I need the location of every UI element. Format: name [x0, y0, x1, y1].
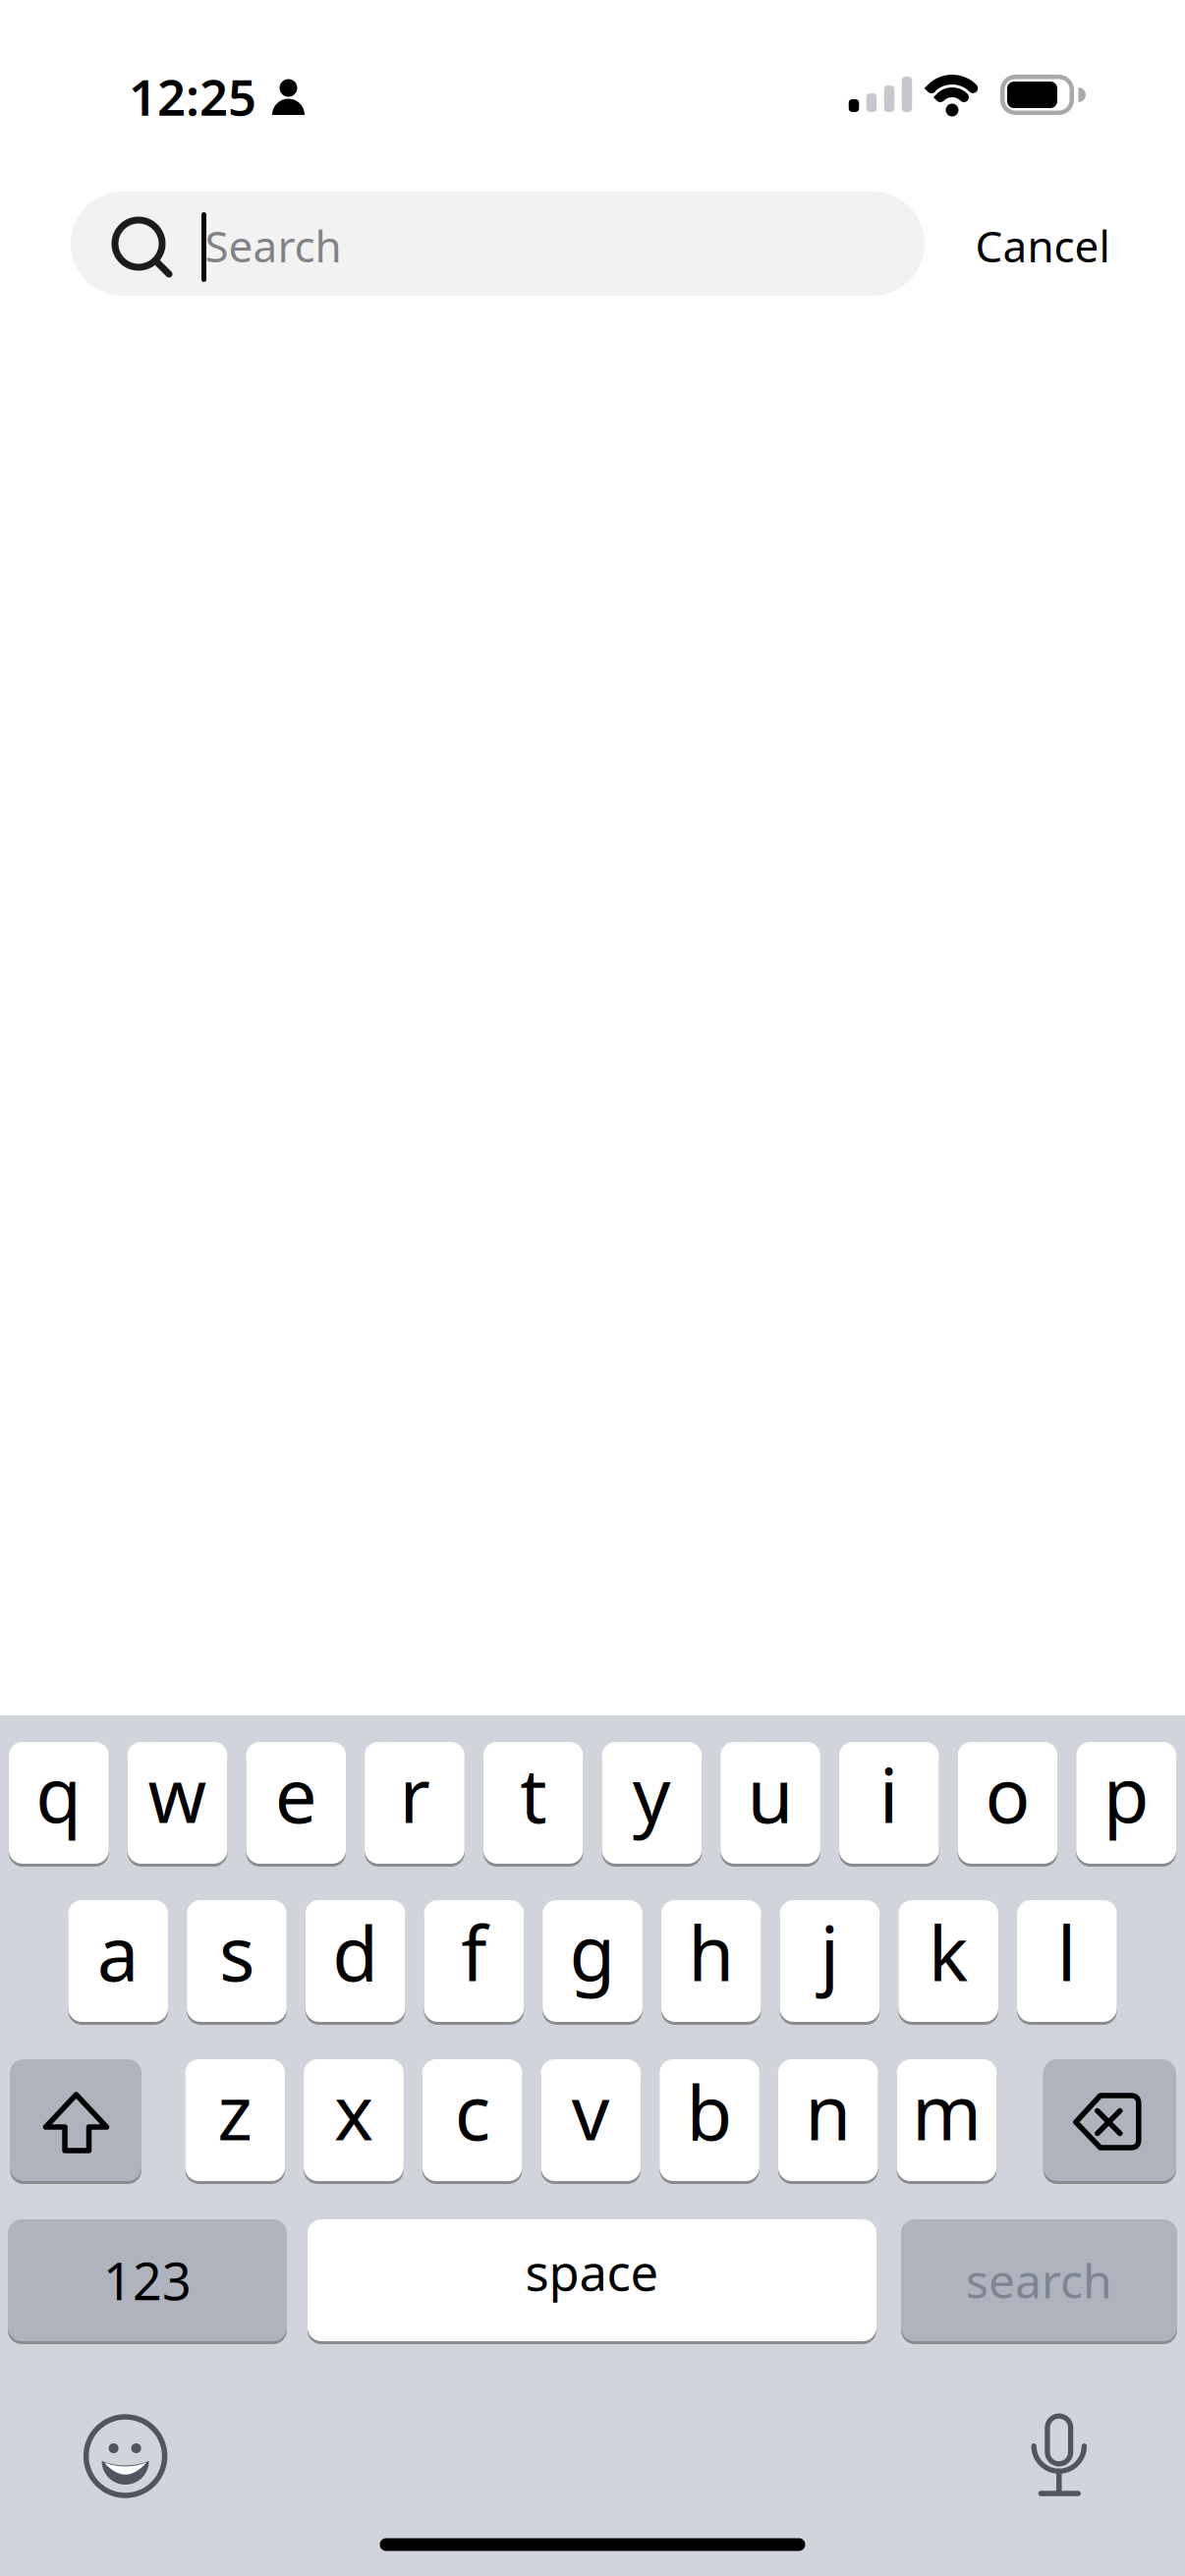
button[interactable]: q	[9, 1742, 109, 1864]
staticText: search	[966, 2249, 1112, 2312]
button[interactable]: Emoji	[71, 2402, 179, 2510]
button[interactable]: search	[901, 2219, 1177, 2341]
button[interactable]: c	[422, 2059, 522, 2181]
staticText: Cancel	[975, 217, 1110, 274]
staticText: t	[520, 1744, 546, 1843]
staticText: n	[805, 2062, 851, 2161]
button[interactable]: m	[897, 2059, 997, 2181]
staticText: z	[217, 2062, 253, 2161]
button[interactable]: s	[187, 1900, 287, 2022]
button[interactable]: p	[1076, 1742, 1176, 1864]
button[interactable]: i	[839, 1742, 939, 1864]
button[interactable]: Delete	[1043, 2059, 1176, 2181]
button[interactable]: v	[541, 2059, 641, 2181]
button[interactable]: z	[185, 2059, 285, 2181]
button[interactable]: y	[602, 1742, 702, 1864]
button[interactable]: l	[1017, 1900, 1117, 2022]
button[interactable]: g	[543, 1900, 643, 2022]
staticText: i	[879, 1744, 899, 1843]
staticText: p	[1103, 1744, 1149, 1843]
button[interactable]: r	[365, 1742, 465, 1864]
staticText: 123	[103, 2246, 192, 2314]
staticText: l	[1057, 1903, 1077, 2002]
staticText: s	[219, 1903, 254, 2002]
staticText: g	[569, 1903, 616, 2002]
button[interactable]: w	[127, 1742, 227, 1864]
staticText: Search	[205, 217, 341, 274]
button[interactable]: h	[661, 1900, 761, 2022]
staticText: c	[455, 2062, 490, 2161]
button[interactable]: d	[305, 1900, 405, 2022]
staticText: y	[633, 1744, 671, 1843]
button[interactable]: f	[424, 1900, 524, 2022]
button[interactable]: Cancel	[975, 217, 1110, 274]
button[interactable]: x	[304, 2059, 404, 2181]
staticText: u	[747, 1744, 794, 1843]
button[interactable]: n	[778, 2059, 878, 2181]
button[interactable]: b	[660, 2059, 759, 2181]
button[interactable]: Dictate	[1005, 2413, 1113, 2521]
staticText: r	[399, 1744, 430, 1843]
staticText: k	[928, 1903, 968, 2002]
staticText: f	[461, 1903, 487, 2002]
staticText: w	[148, 1744, 207, 1843]
button[interactable]: space	[308, 2219, 876, 2341]
staticText: j	[820, 1903, 840, 2002]
button[interactable]: Shift	[10, 2059, 141, 2181]
staticText: v	[572, 2062, 610, 2161]
staticText: m	[912, 2062, 982, 2161]
staticText: e	[275, 1744, 317, 1843]
button[interactable]: o	[958, 1742, 1058, 1864]
staticText: x	[334, 2062, 373, 2161]
staticText: a	[97, 1903, 139, 2002]
button[interactable]: e	[246, 1742, 346, 1864]
button[interactable]: k	[898, 1900, 998, 2022]
button[interactable]: 123	[8, 2219, 287, 2341]
staticText: space	[525, 2238, 659, 2305]
staticText: 12:25	[129, 63, 256, 129]
button[interactable]: a	[68, 1900, 168, 2022]
staticText: q	[36, 1744, 82, 1843]
staticText: o	[985, 1744, 1030, 1843]
staticText: b	[686, 2062, 733, 2161]
staticText: h	[688, 1903, 734, 2002]
button[interactable]: u	[720, 1742, 820, 1864]
button[interactable]: j	[780, 1900, 880, 2022]
button[interactable]: t	[483, 1742, 583, 1864]
button[interactable]: Search	[71, 192, 925, 296]
staticText: d	[332, 1903, 378, 2002]
